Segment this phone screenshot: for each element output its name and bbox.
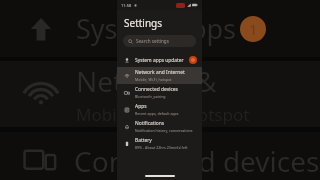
staticText: 1 xyxy=(249,19,258,39)
staticText: Battery xyxy=(135,137,152,144)
button[interactable]: Network and Internet xyxy=(117,67,202,84)
staticText: 11:58 xyxy=(121,3,132,8)
staticText: Bluetooth, pairing xyxy=(135,94,166,99)
staticText: Mobile, Wi‑Fi, hotspot xyxy=(76,103,250,126)
staticText: Apps xyxy=(135,103,147,110)
staticText: Network and Internet xyxy=(135,69,185,76)
staticText: System apps updater xyxy=(135,57,184,64)
staticText: Settings xyxy=(124,16,163,30)
staticText: Connected devices xyxy=(74,142,320,180)
button[interactable]: Battery xyxy=(117,135,202,152)
button[interactable]: System apps updater xyxy=(117,53,202,67)
staticText: Notifications xyxy=(135,120,165,127)
staticText: Notification history, conversations xyxy=(135,128,193,133)
staticText: Connected devices xyxy=(135,86,178,93)
staticText: 89% - About 22hrs 23min(s) left xyxy=(135,145,188,150)
staticText: Mobile, Wi-Fi, hotspot xyxy=(135,77,172,82)
staticText: Search settings xyxy=(136,38,169,44)
staticText: Network & internet xyxy=(76,62,320,100)
button[interactable]: Connected devices xyxy=(117,84,202,101)
staticText: Recent apps, default apps xyxy=(135,111,179,116)
button[interactable]: Notifications xyxy=(117,118,202,135)
button[interactable]: Search settings xyxy=(123,35,196,47)
button[interactable]: Apps xyxy=(117,101,202,118)
staticText: System apps updater xyxy=(76,10,306,47)
